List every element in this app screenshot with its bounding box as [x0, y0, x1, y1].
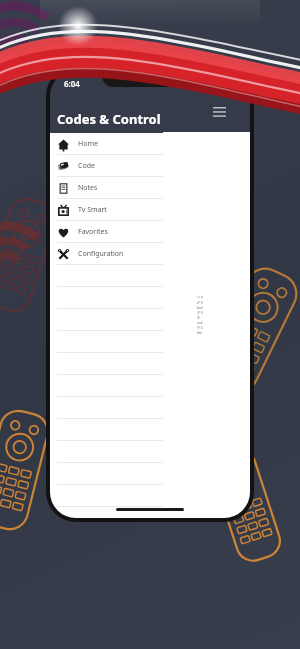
staticText: 1° P: [197, 296, 203, 300]
staticText: Configuration: [78, 249, 124, 259]
staticText: cod: [197, 321, 203, 325]
staticText: 3° E: [197, 311, 203, 315]
staticText: Code: [78, 161, 95, 171]
staticText: Favorites: [78, 227, 108, 237]
button[interactable]: Open navigation menu: [207, 100, 231, 124]
button[interactable]: Favorites: [50, 221, 163, 243]
button[interactable]: Notes: [50, 177, 163, 199]
button[interactable]: Configuration: [50, 243, 163, 265]
staticText: 5° S: [197, 326, 203, 330]
staticText: Tv Smart: [78, 205, 107, 215]
staticText: 2° S: [197, 301, 203, 305]
staticText: the: [197, 331, 202, 335]
button[interactable]: Code: [50, 155, 163, 177]
button[interactable]: Tv Smart: [50, 199, 163, 221]
staticText: Notes: [78, 183, 98, 193]
staticText: buil: [197, 306, 203, 310]
staticText: 4°: [197, 316, 202, 320]
staticText: Home: [78, 139, 98, 149]
staticText: Codes & Control: [57, 110, 161, 128]
staticText: 6:04: [64, 78, 80, 89]
button[interactable]: Home: [50, 133, 163, 155]
